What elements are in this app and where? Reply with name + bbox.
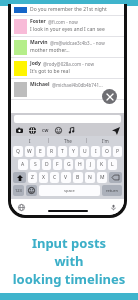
staticText: with (0, 252, 138, 270)
staticText: Q (16, 148, 20, 155)
button[interactable]: Emoji keyboard (26, 185, 37, 196)
button[interactable]: The (49, 136, 86, 145)
staticText: T (61, 148, 64, 155)
staticText: A (21, 161, 25, 168)
staticText: M (100, 174, 105, 181)
button[interactable]: I'm (87, 136, 124, 145)
staticText: @rody@028a.com - now (43, 61, 94, 67)
staticText: space (64, 188, 75, 193)
button[interactable]: Audio (67, 126, 76, 135)
staticText: 123 (15, 188, 22, 193)
button[interactable]: Michael (11, 79, 124, 100)
button[interactable]: Q (13, 146, 23, 157)
staticText: I look in your eyes and I can see (30, 26, 105, 33)
staticText: R (50, 148, 54, 155)
button[interactable]: Z (28, 172, 37, 183)
button[interactable]: V (61, 172, 71, 183)
staticText: J (90, 161, 92, 168)
button[interactable]: D (42, 159, 51, 170)
staticText: @m@widcae3c4b3.. - now (50, 40, 105, 46)
button[interactable]: Shift (13, 172, 26, 183)
button[interactable]: K (97, 159, 106, 170)
staticText: I (29, 138, 31, 144)
button[interactable]: Do you remember the 21st night (11, 4, 124, 16)
staticText: mother mother... (30, 47, 70, 54)
button[interactable]: E (36, 146, 45, 157)
button[interactable]: Globe (28, 126, 37, 135)
staticText: V (64, 174, 68, 181)
staticText: P (116, 148, 120, 155)
button[interactable]: S (30, 159, 40, 170)
staticText: U (83, 148, 87, 155)
button[interactable]: T (58, 146, 67, 157)
staticText: Do you remember the 21st night (30, 6, 107, 13)
button[interactable]: J (86, 159, 95, 170)
staticText: W (27, 148, 32, 155)
button[interactable]: L (108, 159, 117, 170)
staticText: F (56, 161, 59, 168)
staticText: L (111, 161, 114, 168)
button[interactable]: C (50, 172, 59, 183)
staticText: K (100, 161, 104, 168)
staticText: S (34, 161, 37, 168)
staticText: Y (72, 148, 75, 155)
staticText: G (67, 161, 71, 168)
staticText: The (64, 138, 72, 144)
button[interactable]: U (80, 146, 89, 157)
button[interactable]: Content warning (41, 126, 50, 135)
button[interactable]: Camera (15, 126, 24, 135)
staticText: I'm (102, 138, 109, 144)
button[interactable]: space (39, 185, 100, 196)
button[interactable]: G (64, 159, 73, 170)
button[interactable]: Close (102, 89, 117, 104)
staticText: looking timelines (0, 270, 138, 288)
button[interactable]: A (18, 159, 28, 170)
button[interactable]: P (113, 146, 122, 157)
button[interactable]: return (102, 185, 122, 196)
button[interactable]: Emoji (54, 126, 63, 135)
staticText: Michael (30, 81, 50, 88)
staticText: It's got to be real (30, 68, 70, 75)
button[interactable]: Backspace (109, 172, 122, 183)
staticText: @michael4b0db4b741... (52, 82, 103, 88)
staticText: Foster (30, 18, 46, 25)
staticText: Z (31, 174, 34, 181)
staticText: O (105, 148, 109, 155)
staticText: Jody (30, 60, 41, 67)
button[interactable]: 123 (13, 185, 24, 196)
staticText: D (45, 161, 49, 168)
staticText: Marvin (30, 39, 48, 46)
button[interactable]: Jody (11, 58, 124, 79)
button[interactable]: Foster (11, 16, 124, 37)
button[interactable]: I (91, 146, 100, 157)
staticText: C (53, 174, 57, 181)
button[interactable]: N (85, 172, 95, 183)
button[interactable]: Marvin (11, 37, 124, 58)
button[interactable]: X (39, 172, 48, 183)
staticText: @fi.com - now (48, 19, 78, 25)
staticText: Input posts (0, 234, 138, 252)
button[interactable]: B (73, 172, 83, 183)
button[interactable]: Dictation (110, 204, 117, 211)
button[interactable]: I (11, 136, 48, 145)
staticText: CW (42, 128, 49, 133)
button[interactable]: H (75, 159, 84, 170)
button[interactable]: R (47, 146, 56, 157)
staticText: H (78, 161, 82, 168)
button[interactable]: Switch keyboard (18, 204, 25, 211)
staticText: return (106, 188, 118, 193)
staticText: I (95, 148, 97, 155)
staticText: E (39, 148, 42, 155)
staticText: X (42, 174, 45, 181)
staticText: B (76, 174, 80, 181)
button[interactable]: Y (69, 146, 78, 157)
staticText: N (88, 174, 92, 181)
button[interactable]: F (53, 159, 62, 170)
button[interactable]: W (25, 146, 34, 157)
button[interactable]: O (102, 146, 111, 157)
button[interactable]: M (97, 172, 107, 183)
button[interactable]: Send (111, 126, 120, 135)
